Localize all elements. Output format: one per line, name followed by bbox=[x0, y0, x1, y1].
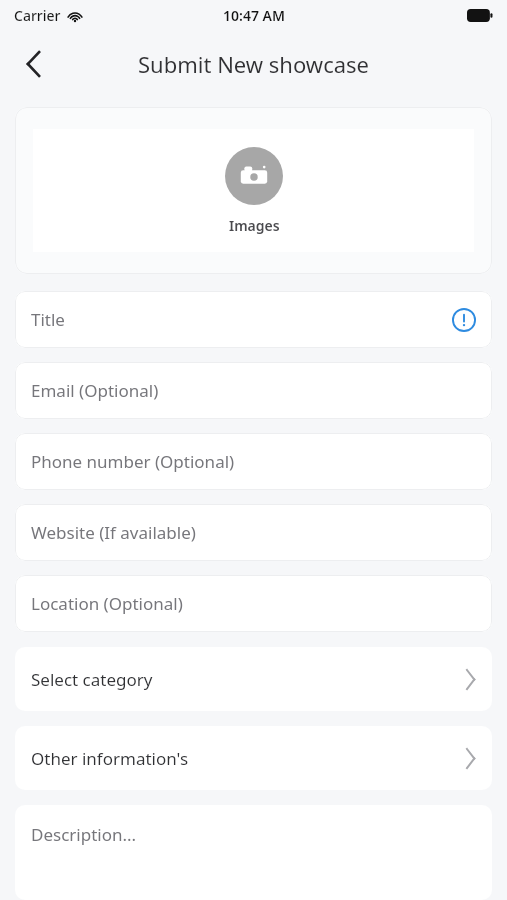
button[interactable]: Phone number (Optional) bbox=[15, 433, 492, 490]
staticText: Select category bbox=[31, 668, 465, 691]
button[interactable]: Location (Optional) bbox=[15, 575, 492, 632]
staticText: Location (Optional) bbox=[31, 592, 476, 615]
button[interactable]: Back bbox=[12, 42, 56, 86]
button[interactable]: Select category bbox=[15, 647, 492, 711]
staticText: Description... bbox=[31, 823, 137, 846]
button[interactable]: Other information's bbox=[15, 726, 492, 790]
staticText: Images bbox=[229, 216, 280, 235]
staticText: Title bbox=[31, 308, 452, 331]
button[interactable]: Images bbox=[15, 107, 492, 274]
button[interactable]: Email (Optional) bbox=[15, 362, 492, 419]
button[interactable]: Description... bbox=[15, 805, 492, 900]
staticText: Email (Optional) bbox=[31, 379, 476, 402]
staticText: Carrier bbox=[14, 6, 61, 25]
button[interactable]: Title bbox=[15, 291, 492, 348]
staticText: Website (If available) bbox=[31, 521, 476, 544]
button[interactable]: Website (If available) bbox=[15, 504, 492, 561]
staticText: Submit New showcase bbox=[138, 49, 369, 79]
staticText: 10:47 AM bbox=[223, 6, 285, 25]
staticText: Phone number (Optional) bbox=[31, 450, 476, 473]
staticText: Other information's bbox=[31, 747, 465, 770]
